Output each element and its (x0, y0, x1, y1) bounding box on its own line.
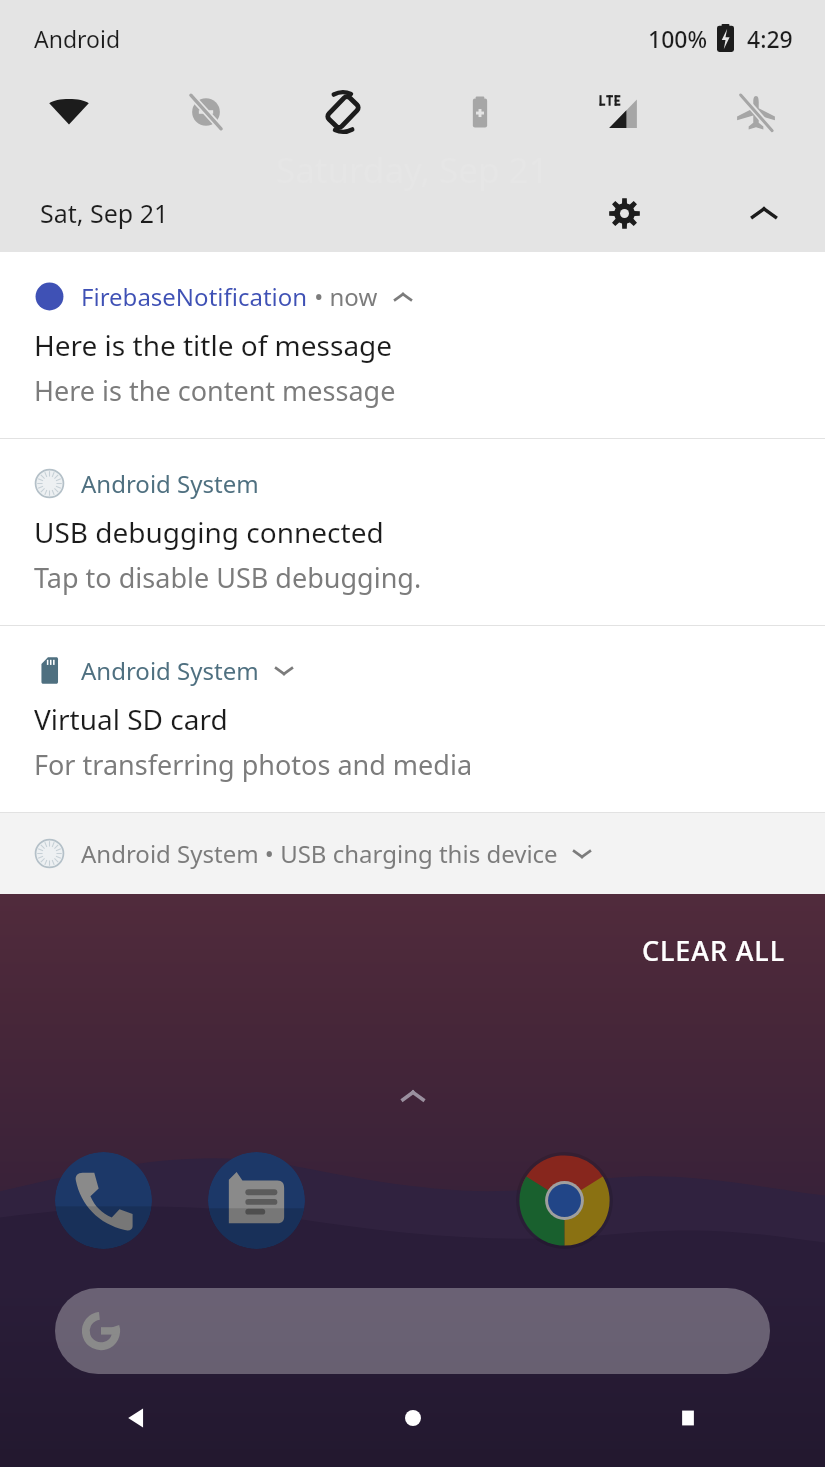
button[interactable]: Settings (593, 182, 655, 244)
button[interactable]: Back (0, 1369, 275, 1467)
button[interactable]: Recents (550, 1369, 825, 1467)
button[interactable]: Messages (208, 1152, 305, 1249)
staticText: • now (308, 280, 378, 313)
button[interactable]: Home (275, 1369, 550, 1467)
button[interactable]: Android System (0, 439, 825, 625)
button[interactable]: Mobile data LTE (549, 76, 687, 148)
button[interactable]: CLEAR ALL (612, 918, 815, 983)
staticText: Sat, Sep 21 (40, 196, 169, 230)
button[interactable]: All apps (391, 1074, 435, 1118)
button[interactable]: Phone (55, 1152, 152, 1249)
staticText: Tap to disable USB debugging. (34, 559, 422, 596)
button[interactable]: Expand quick settings (733, 182, 795, 244)
staticText: USB debugging connected (34, 513, 384, 551)
button[interactable]: Auto rotate (274, 76, 411, 148)
staticText: CLEAR ALL (642, 932, 785, 969)
staticText: FirebaseNotification (81, 280, 308, 313)
staticText: Here is the title of message (34, 326, 393, 364)
staticText: Android System (81, 467, 259, 500)
button[interactable]: Android System (0, 626, 825, 812)
staticText: Android (34, 23, 121, 54)
button[interactable]: Chrome (516, 1152, 613, 1249)
button[interactable]: FirebaseNotification (0, 252, 825, 438)
staticText: Android System (81, 654, 259, 687)
button[interactable]: Wi-Fi (0, 76, 137, 148)
staticText: 4:29 (747, 23, 793, 54)
button[interactable]: Search (55, 1288, 770, 1374)
staticText: Here is the content message (34, 372, 396, 409)
staticText: 100% (648, 23, 708, 54)
staticText: Android System • USB charging this devic… (81, 837, 558, 870)
button[interactable]: Battery saver (411, 76, 549, 148)
staticText: Virtual SD card (34, 700, 228, 738)
button[interactable]: Airplane mode (687, 76, 825, 148)
button[interactable]: Do not disturb (137, 76, 274, 148)
button[interactable]: Android System • USB charging this devic… (0, 813, 825, 894)
staticText: For transferring photos and media (34, 746, 473, 783)
